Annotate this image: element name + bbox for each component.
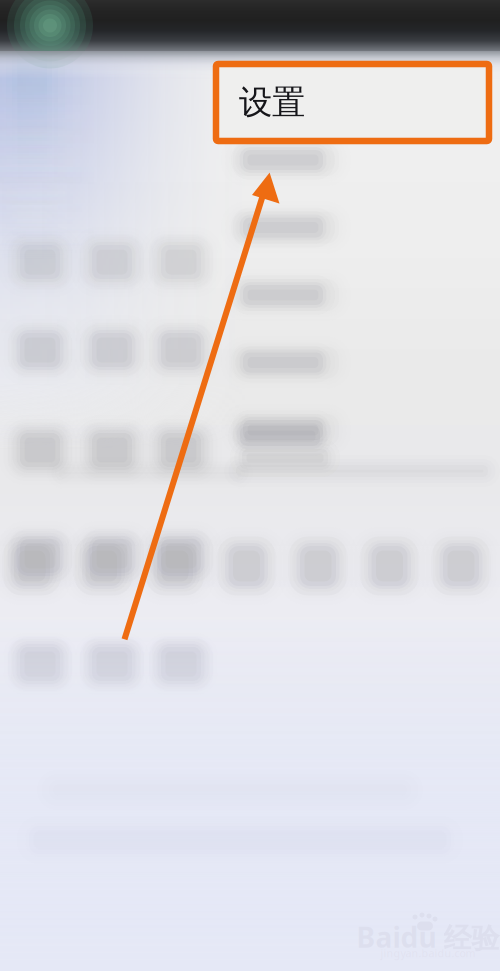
staticText: Baidu 经验 (356, 918, 499, 956)
staticText: 设置 (239, 82, 305, 123)
button[interactable]: 设置 (216, 64, 489, 141)
